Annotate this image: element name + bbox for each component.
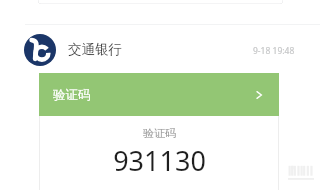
button[interactable]: 验证码 <box>39 73 279 116</box>
button[interactable] <box>38 0 283 4</box>
staticText: 交通银行 <box>68 41 122 58</box>
staticText: 验证码 <box>143 126 176 140</box>
staticText: 验证码 <box>53 87 91 103</box>
button[interactable]: Bank of Communications logo <box>24 34 56 66</box>
staticText: 9-18 19:48 <box>253 45 295 57</box>
staticText: 931130 <box>113 142 206 179</box>
button[interactable]: 验证码 <box>39 116 279 190</box>
